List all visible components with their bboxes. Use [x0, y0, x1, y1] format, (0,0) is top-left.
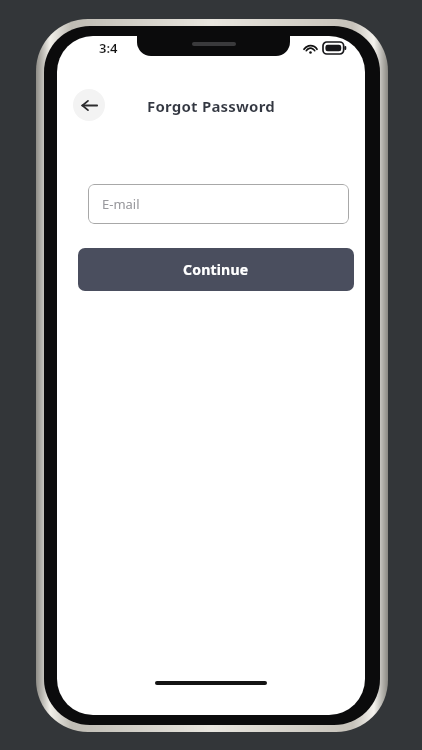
button[interactable]: Continue: [78, 248, 354, 291]
staticText: Forgot Password: [57, 96, 365, 116]
staticText: Continue: [183, 260, 249, 279]
staticText: 3:4: [99, 39, 118, 57]
button[interactable]: Back: [73, 89, 105, 121]
staticText: E-mail: [102, 195, 140, 213]
button[interactable]: E-mail: [88, 184, 349, 224]
